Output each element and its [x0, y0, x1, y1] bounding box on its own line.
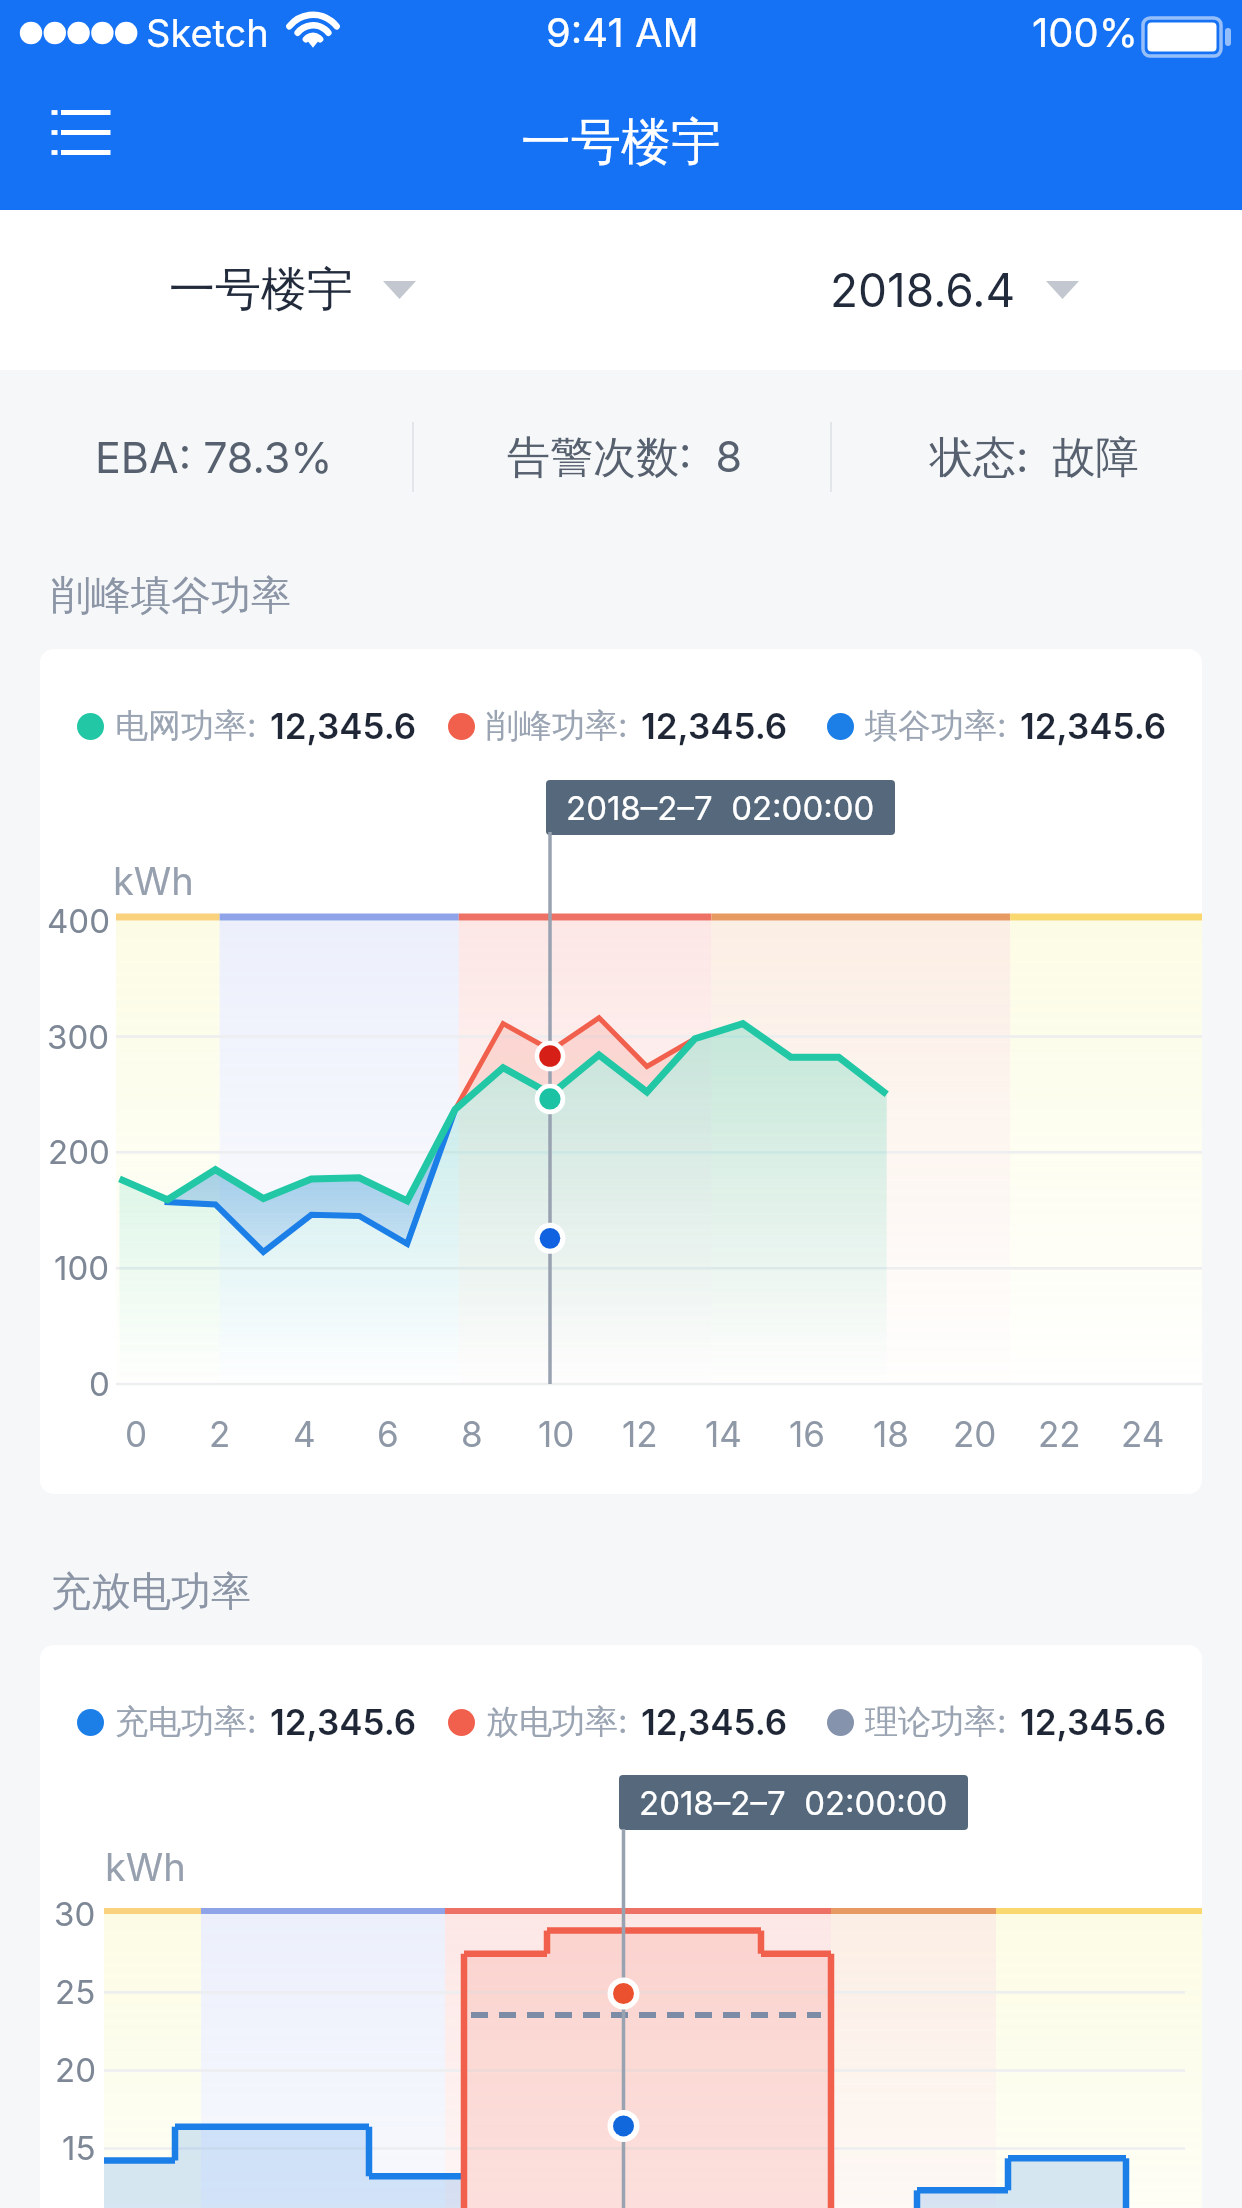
staticText: 100 — [54, 1248, 110, 1288]
staticText: 4 — [293, 1413, 316, 1455]
staticText: 一号楼宇 — [169, 261, 353, 319]
staticText: 14 — [705, 1413, 742, 1455]
staticText: 6 — [377, 1413, 399, 1455]
staticText: 电网功率: — [115, 705, 257, 747]
staticText: 18 — [873, 1413, 909, 1455]
staticText: kWh — [113, 858, 194, 904]
staticText: 30 — [54, 1894, 96, 1934]
staticText: Sketch — [146, 10, 269, 56]
staticText: 12 — [622, 1413, 658, 1455]
button[interactable]: 2018.6.4 — [830, 210, 1079, 370]
staticText: 12,345.6 — [1020, 705, 1167, 747]
button[interactable]: 一号楼宇 — [169, 210, 416, 370]
button[interactable]: 电网功率: — [77, 698, 417, 754]
staticText: 削峰填谷功率 — [51, 570, 291, 620]
staticText: 200 — [48, 1132, 110, 1172]
staticText: 12,345.6 — [1020, 1701, 1167, 1743]
staticText: 15 — [62, 2128, 96, 2168]
button[interactable]: 理论功率: — [827, 1694, 1167, 1750]
button[interactable]: 填谷功率: — [827, 698, 1167, 754]
staticText: 24 — [1121, 1413, 1165, 1455]
staticText: 8 — [461, 1413, 483, 1455]
staticText: 2018.6.4 — [830, 262, 1016, 318]
staticText: 0 — [89, 1364, 110, 1404]
staticText: 填谷功率: — [865, 705, 1007, 747]
staticText: EBA: 78.3% — [95, 431, 333, 483]
staticText: 一号楼宇 — [521, 111, 721, 174]
staticText: 2018–2–7 02:00:00 — [639, 1783, 948, 1823]
staticText: 300 — [47, 1017, 110, 1057]
staticText: 充电功率: — [115, 1701, 257, 1743]
staticText: 状态: 故障 — [930, 430, 1139, 484]
staticText: 充放电功率 — [51, 1566, 251, 1616]
button[interactable]: 削峰功率: — [448, 698, 788, 754]
staticText: 22 — [1038, 1413, 1081, 1455]
staticText: 400 — [47, 901, 110, 941]
staticText: 12,345.6 — [641, 705, 788, 747]
staticText: kWh — [105, 1844, 186, 1890]
staticText: 25 — [55, 1972, 96, 2012]
staticText: 削峰功率: — [486, 705, 628, 747]
staticText: 20 — [953, 1413, 997, 1455]
staticText: 20 — [55, 2050, 96, 2090]
button[interactable]: 充电功率: — [77, 1694, 417, 1750]
staticText: 10 — [538, 1413, 575, 1455]
staticText: 2 — [209, 1413, 231, 1455]
staticText: 2018–2–7 02:00:00 — [566, 788, 875, 828]
staticText: 12,345.6 — [641, 1701, 788, 1743]
staticText: 12,345.6 — [270, 1701, 417, 1743]
staticText: 12,345.6 — [270, 705, 417, 747]
button[interactable]: Menu — [16, 82, 146, 200]
staticText: 9:41 AM — [546, 8, 699, 56]
button[interactable]: 放电功率: — [448, 1694, 788, 1750]
staticText: 理论功率: — [865, 1701, 1007, 1743]
staticText: 告警次数: 8 — [507, 430, 743, 484]
staticText: 放电功率: — [486, 1701, 628, 1743]
staticText: 100% — [1032, 8, 1139, 56]
staticText: 16 — [789, 1413, 825, 1455]
staticText: 0 — [125, 1413, 148, 1455]
